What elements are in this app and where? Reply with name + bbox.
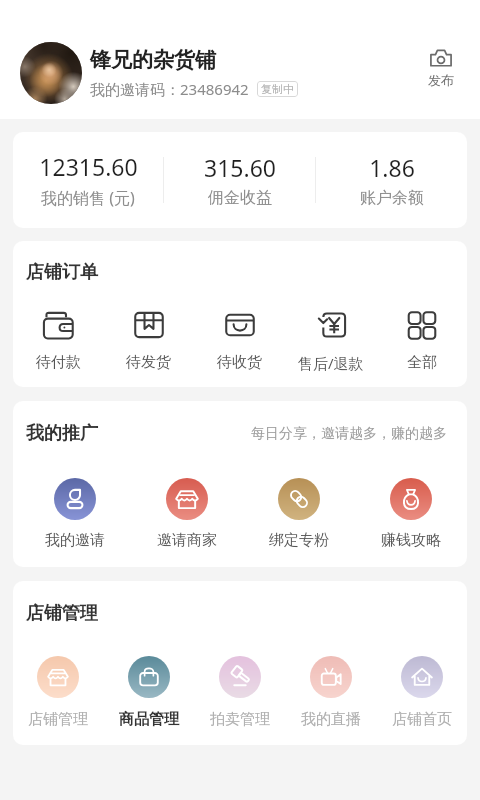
staticText: 12315.60: [39, 151, 138, 182]
staticText: 绑定专粉: [269, 531, 329, 550]
button[interactable]: 头像: [20, 42, 82, 104]
button[interactable]: 1.86: [316, 132, 467, 228]
staticText: 待付款: [36, 353, 81, 372]
button[interactable]: 待收货: [194, 309, 285, 372]
staticText: 315.60: [204, 152, 276, 183]
staticText: 我的邀请码：23486942: [90, 79, 249, 99]
button[interactable]: 我的邀请: [18, 478, 131, 550]
button[interactable]: 绑定专粉: [243, 478, 355, 550]
button[interactable]: 全部: [376, 309, 467, 372]
staticText: 发布: [428, 72, 454, 88]
staticText: 店铺管理: [28, 710, 88, 729]
button[interactable]: 店铺管理: [13, 656, 103, 729]
staticText: 赚钱攻略: [381, 531, 441, 550]
staticText: 拍卖管理: [210, 710, 270, 729]
staticText: 我的直播: [301, 710, 361, 729]
staticText: 全部: [407, 353, 437, 372]
staticText: 店铺订单: [26, 261, 98, 284]
button[interactable]: 发布: [424, 44, 458, 92]
button[interactable]: 315.60: [164, 132, 315, 228]
staticText: 佣金收益: [208, 188, 272, 208]
button[interactable]: 待付款: [13, 309, 103, 372]
staticText: 待收货: [217, 353, 262, 372]
staticText: 每日分享，邀请越多，赚的越多: [251, 425, 447, 443]
staticText: 店铺首页: [392, 710, 452, 729]
button[interactable]: 邀请商家: [131, 478, 243, 550]
staticText: 我的邀请: [45, 531, 105, 550]
button[interactable]: 复制中: [257, 81, 298, 97]
staticText: 售后/退款: [298, 353, 364, 373]
staticText: 我的推广: [26, 422, 98, 445]
button[interactable]: 店铺首页: [376, 656, 467, 729]
staticText: 待发货: [126, 353, 171, 372]
button[interactable]: 12315.60: [13, 132, 163, 228]
staticText: 锋兄的杂货铺: [90, 47, 216, 73]
button[interactable]: 赚钱攻略: [355, 478, 467, 550]
staticText: 我的销售 (元): [41, 187, 135, 209]
staticText: 账户余额: [360, 188, 424, 208]
staticText: 商品管理: [119, 710, 179, 729]
button[interactable]: 我的直播: [285, 656, 376, 729]
button[interactable]: 商品管理: [103, 656, 194, 729]
staticText: 复制中: [261, 82, 294, 96]
staticText: 店铺管理: [26, 602, 98, 625]
staticText: 邀请商家: [157, 531, 217, 550]
button[interactable]: 待发货: [103, 309, 194, 372]
button[interactable]: 拍卖管理: [194, 656, 285, 729]
button[interactable]: 售后/退款: [285, 309, 376, 373]
staticText: 1.86: [369, 152, 415, 183]
